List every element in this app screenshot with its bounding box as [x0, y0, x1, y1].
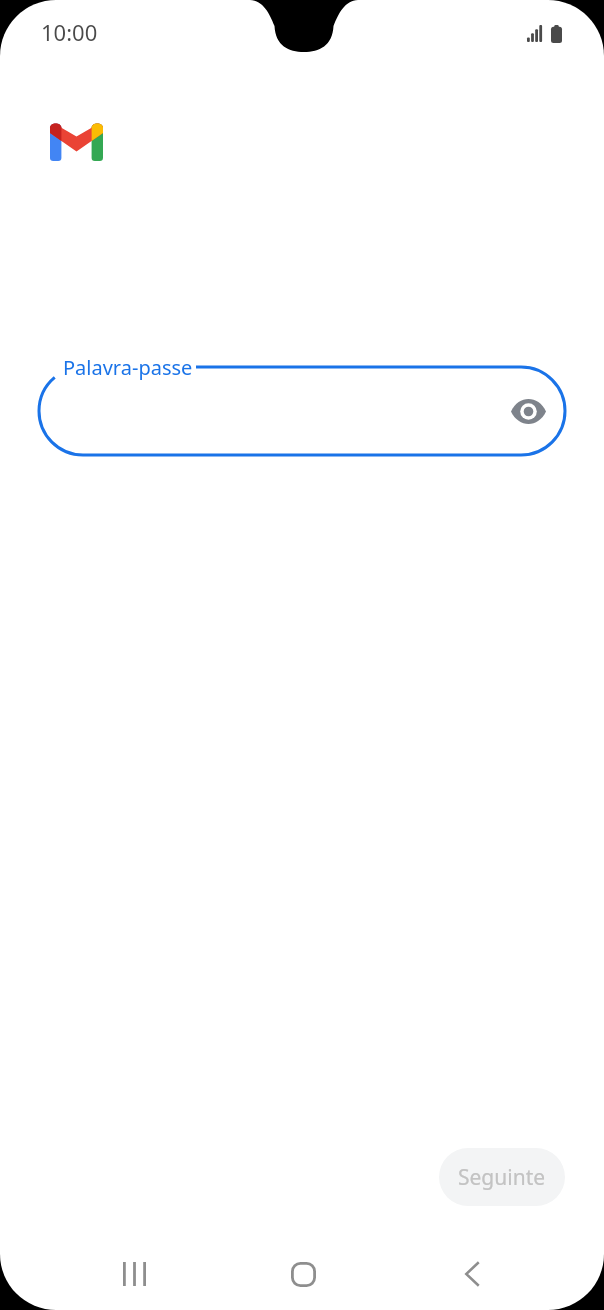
button[interactable]: Recent apps — [94, 1238, 174, 1310]
button[interactable]: Seguinte — [439, 1148, 565, 1206]
button[interactable]: Show password — [502, 385, 554, 437]
staticText: 10:00 — [41, 17, 98, 47]
staticText: Seguinte — [458, 1163, 546, 1192]
button[interactable]: Back — [432, 1238, 512, 1310]
staticText: Palavra-passe — [63, 354, 193, 381]
button[interactable]: Palavra-passe — [39, 366, 505, 456]
button[interactable]: Home — [263, 1238, 343, 1310]
